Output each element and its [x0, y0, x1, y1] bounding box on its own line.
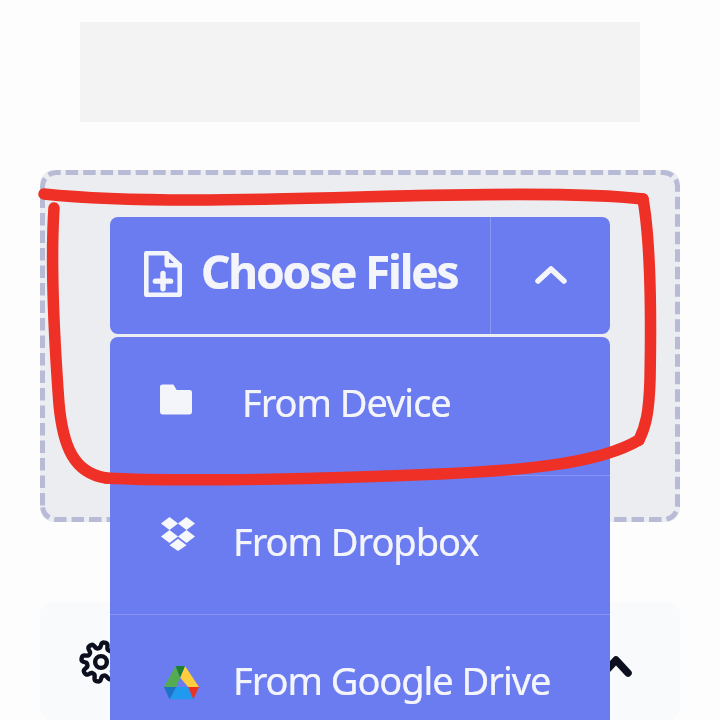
button[interactable]: Toggle menu [491, 217, 610, 334]
button[interactable]: From Google Drive [110, 615, 610, 720]
button[interactable]: Collapse [596, 641, 636, 681]
button[interactable]: Choose Files [110, 217, 490, 334]
staticText: From Dropbox [233, 515, 479, 567]
button[interactable]: From Dropbox [110, 476, 610, 614]
staticText: From Google Drive [233, 654, 551, 706]
button[interactable]: From Device [110, 337, 610, 475]
button[interactable]: Settings [79, 640, 123, 684]
staticText: From Device [242, 376, 451, 428]
staticText: Choose Files [201, 240, 458, 303]
